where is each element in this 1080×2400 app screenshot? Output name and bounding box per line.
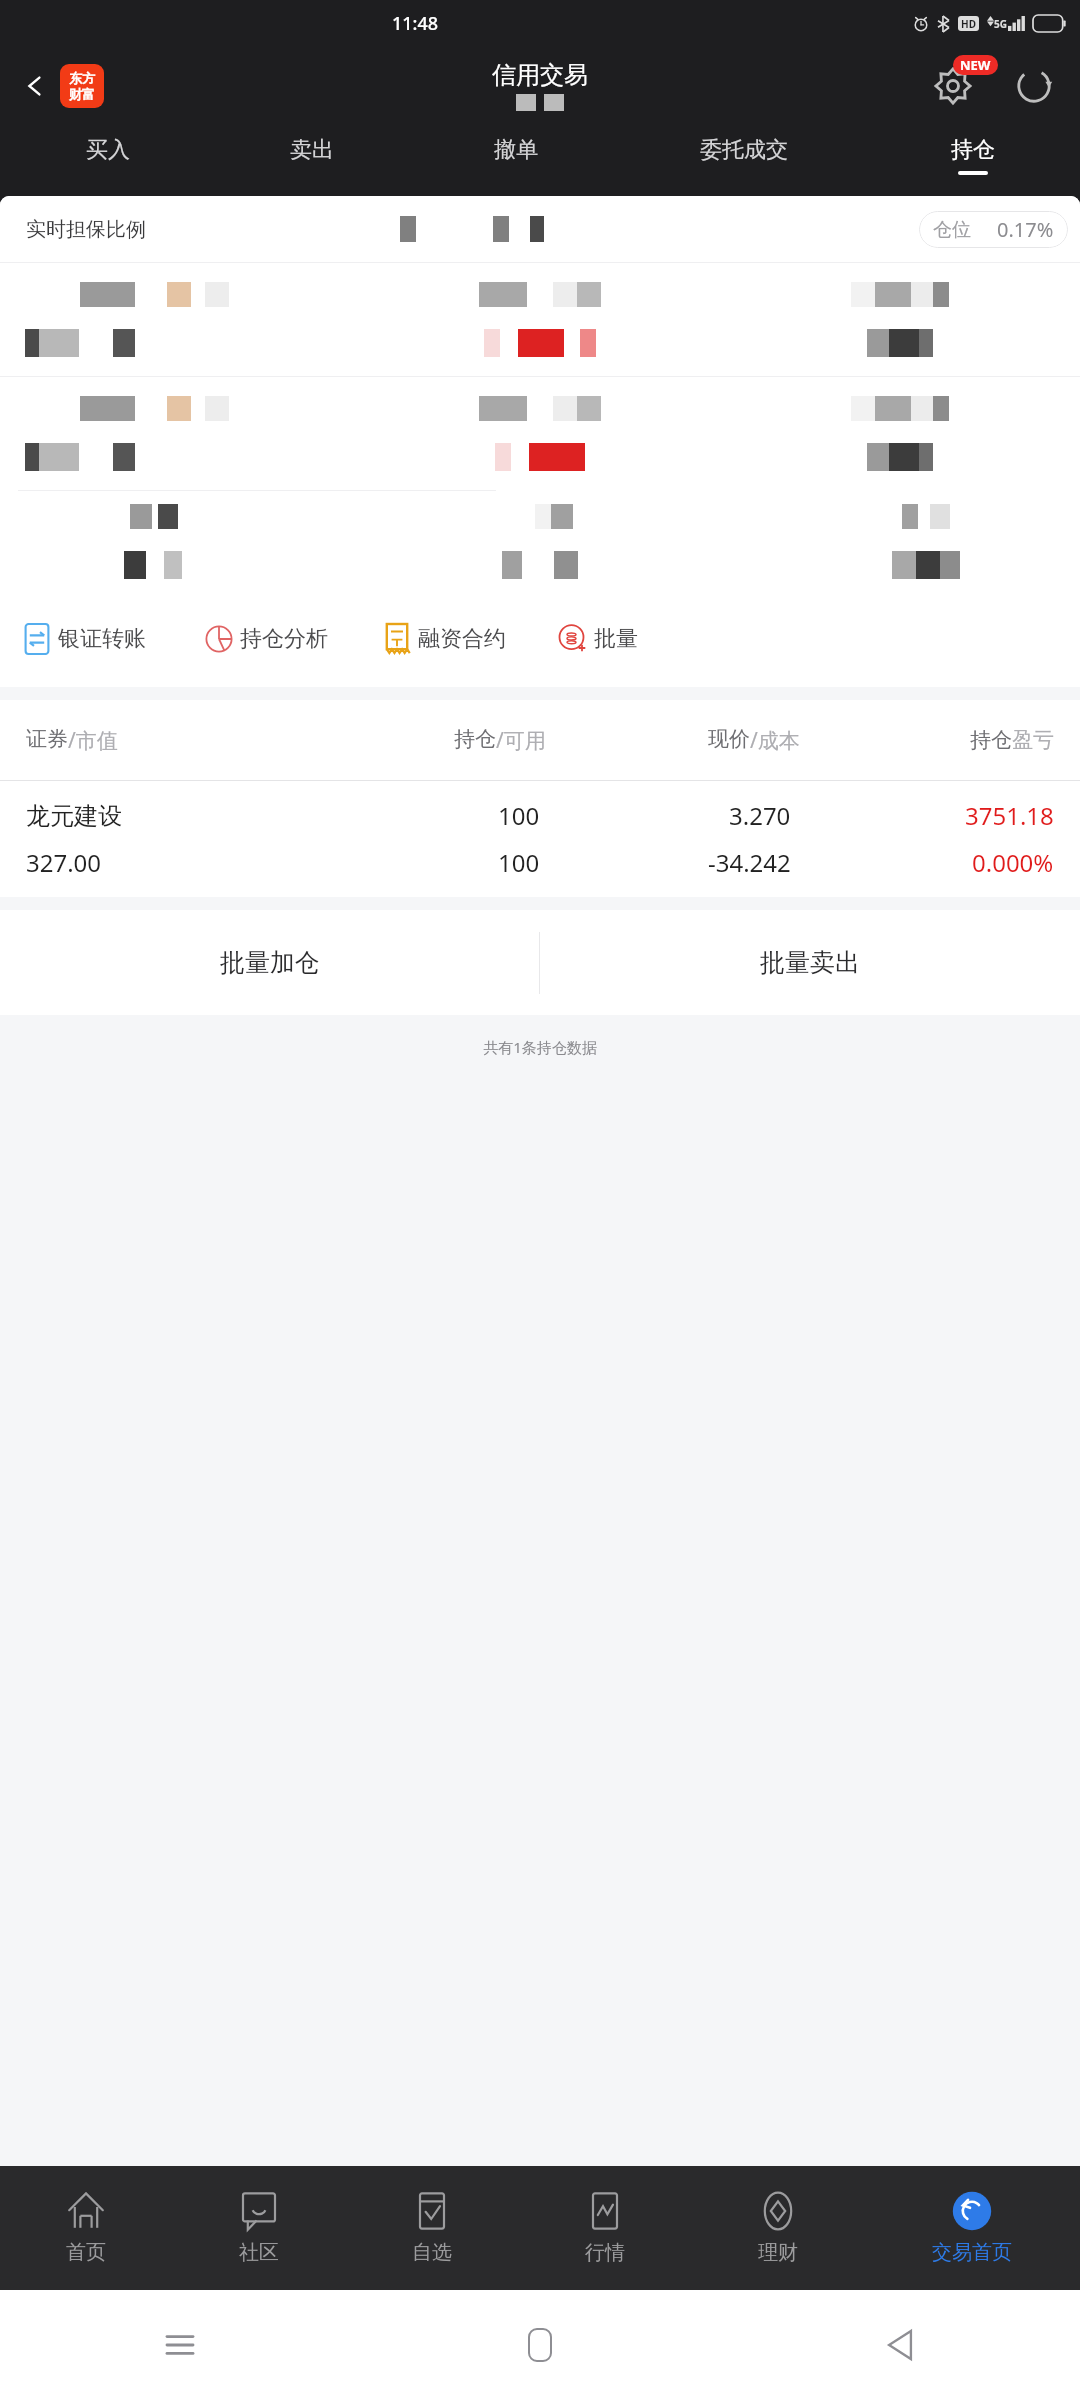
button[interactable]: 首页	[0, 2166, 172, 2290]
staticText: 龙元建设	[26, 801, 122, 831]
staticText: 327.00	[26, 846, 102, 879]
staticText: 首页	[66, 2240, 106, 2265]
button[interactable]: 批量	[558, 620, 638, 658]
button[interactable]: 银证转账	[22, 620, 146, 658]
staticText: 持仓分析	[240, 625, 328, 653]
staticText: 融资合约	[418, 625, 506, 653]
staticText: 信用交易	[492, 60, 588, 90]
staticText: 0.17%	[997, 216, 1054, 243]
staticText: 社区	[239, 2240, 279, 2265]
button[interactable]: 东方	[60, 64, 104, 108]
staticText: 11:48	[392, 11, 439, 36]
button[interactable]: 自选	[345, 2166, 518, 2290]
staticText: 财富	[69, 86, 95, 102]
button[interactable]: 理财	[691, 2166, 864, 2290]
button[interactable]: 持仓	[871, 124, 1074, 187]
button[interactable]: 撤单	[414, 124, 617, 187]
staticText: /市值	[68, 726, 118, 755]
staticText: -34.242	[708, 846, 791, 879]
staticText: /成本	[750, 726, 800, 755]
button[interactable]: Refresh	[1008, 60, 1060, 112]
staticText: 自选	[412, 2240, 452, 2265]
staticText: 银证转账	[58, 625, 146, 653]
staticText: 行情	[585, 2240, 625, 2265]
staticText: 3.270	[729, 799, 791, 832]
staticText: 持仓	[951, 136, 995, 164]
staticText: 盈亏	[1012, 727, 1054, 753]
staticText: 现价	[708, 726, 750, 752]
staticText: 证券	[26, 726, 68, 752]
staticText: 批量加仓	[220, 947, 320, 978]
staticText: 交易首页	[932, 2240, 1012, 2265]
button[interactable]: 批量卖出	[540, 910, 1080, 1015]
button[interactable]: 行情	[518, 2166, 691, 2290]
staticText: HD	[961, 17, 976, 31]
button[interactable]: 批量加仓	[0, 910, 539, 1015]
button[interactable]: 买入	[6, 124, 210, 187]
button[interactable]: 社区	[172, 2166, 345, 2290]
staticText: 持仓	[970, 727, 1012, 753]
button[interactable]: Back	[873, 2318, 927, 2372]
button[interactable]: Recent apps	[153, 2318, 207, 2372]
button[interactable]: 龙元建设	[0, 781, 1080, 897]
staticText: 100	[498, 799, 540, 832]
button[interactable]: 融资合约	[382, 620, 506, 658]
button[interactable]: 持仓分析	[204, 620, 328, 658]
staticText: 买入	[86, 136, 130, 164]
staticText: 卖出	[290, 136, 334, 164]
staticText: 100	[498, 846, 540, 879]
staticText: 委托成交	[700, 136, 788, 164]
staticText: 3751.18	[965, 799, 1054, 832]
staticText: /可用	[496, 726, 546, 755]
button[interactable]: Settings	[924, 57, 982, 115]
staticText: 共有1条持仓数据	[0, 1037, 1080, 1057]
staticText: 撤单	[494, 136, 538, 164]
button[interactable]: 交易首页	[864, 2166, 1080, 2290]
button[interactable]: Home	[513, 2318, 567, 2372]
staticText: 5G	[994, 17, 1007, 31]
staticText: 仓位	[933, 218, 971, 242]
button[interactable]: 卖出	[210, 124, 414, 187]
staticText: 实时担保比例	[26, 217, 146, 242]
staticText: 批量卖出	[760, 947, 860, 978]
staticText: 东方	[69, 70, 95, 86]
button[interactable]: 仓位	[919, 211, 1068, 248]
button[interactable]: Back	[12, 63, 58, 109]
staticText: 批量	[594, 625, 638, 653]
staticText: 0.000%	[972, 846, 1054, 879]
staticText: NEW	[960, 56, 991, 74]
staticText: 持仓	[454, 726, 496, 752]
button[interactable]: 委托成交	[617, 124, 871, 187]
staticText: 理财	[758, 2240, 798, 2265]
